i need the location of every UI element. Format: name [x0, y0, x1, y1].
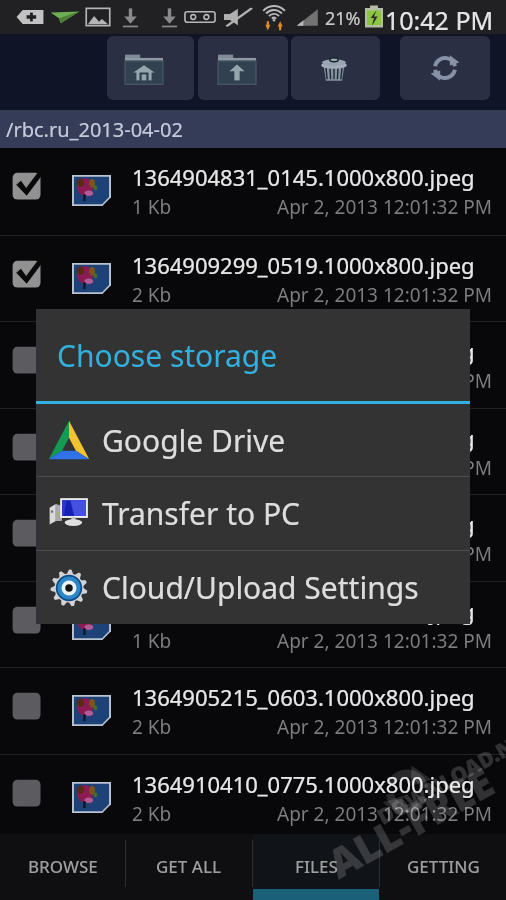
- staticText: FILES: [295, 855, 338, 878]
- staticText: GET ALL: [156, 855, 222, 878]
- button[interactable]: Cloud/Upload Settings: [36, 551, 470, 624]
- staticText: 1364908881_0408.1000x800.jpeg: [132, 423, 475, 453]
- button[interactable]: 1364903372_0220.1000x800.jpeg: [0, 322, 506, 408]
- staticText: BROWSE: [28, 855, 98, 878]
- button[interactable]: GETTING: [380, 834, 506, 900]
- staticText: Apr 2, 2013 12:01:32 PM: [277, 628, 492, 654]
- button[interactable]: Transfer to PC: [36, 477, 470, 550]
- button[interactable]: FILES: [253, 834, 379, 900]
- staticText: Apr 2, 2013 12:01:32 PM: [277, 801, 492, 827]
- button[interactable]: 1364902210_0111.1000x800.jpeg: [0, 495, 506, 581]
- button[interactable]: Delete: [291, 36, 380, 100]
- staticText: 2 Kb: [132, 455, 172, 481]
- button[interactable]: 1364907714_0328.1000x800.jpeg: [0, 582, 506, 667]
- staticText: Google Drive: [102, 420, 286, 461]
- staticText: 10:42 PM: [385, 3, 494, 37]
- button[interactable]: Up one folder: [198, 36, 288, 100]
- staticText: 1 Kb: [132, 194, 172, 220]
- staticText: 2 Kb: [132, 801, 172, 827]
- staticText: 1 Kb: [132, 541, 172, 567]
- button[interactable]: Google Drive: [36, 404, 470, 476]
- staticText: Apr 2, 2013 12:01:32 PM: [277, 368, 492, 394]
- staticText: ALL-FREE: [318, 754, 502, 889]
- button[interactable]: BROWSE: [0, 834, 125, 900]
- staticText: 1364910410_0775.1000x800.jpeg: [132, 769, 475, 799]
- button[interactable]: 1364905215_0603.1000x800.jpeg: [0, 668, 506, 754]
- button[interactable]: 1364909299_0519.1000x800.jpeg: [0, 236, 506, 321]
- staticText: Apr 2, 2013 12:01:32 PM: [277, 541, 492, 567]
- staticText: 1364904831_0145.1000x800.jpeg: [132, 162, 475, 192]
- staticText: Transfer to PC: [102, 493, 301, 534]
- staticText: 2 Kb: [132, 714, 172, 740]
- button[interactable]: GET ALL: [126, 834, 252, 900]
- staticText: 1364909299_0519.1000x800.jpeg: [132, 250, 475, 280]
- staticText: 2 Kb: [132, 282, 172, 308]
- button[interactable]: Home folder: [107, 36, 194, 100]
- button[interactable]: Refresh: [400, 36, 490, 100]
- button[interactable]: 1364904831_0145.1000x800.jpeg: [0, 148, 506, 235]
- button[interactable]: 1364910410_0775.1000x800.jpeg: [0, 755, 506, 840]
- staticText: 1364907714_0328.1000x800.jpeg: [132, 596, 475, 626]
- staticText: 21%: [325, 6, 361, 31]
- staticText: 1364905215_0603.1000x800.jpeg: [132, 682, 475, 712]
- staticText: DOWNLOAD.NET: [372, 720, 506, 831]
- staticText: Apr 2, 2013 12:01:32 PM: [277, 455, 492, 481]
- staticText: Cloud/Upload Settings: [102, 567, 419, 608]
- staticText: 1 Kb: [132, 628, 172, 654]
- staticText: Apr 2, 2013 12:01:32 PM: [277, 282, 492, 308]
- staticText: 1364902210_0111.1000x800.jpeg: [132, 509, 475, 539]
- staticText: 1364903372_0220.1000x800.jpeg: [132, 336, 475, 366]
- staticText: Apr 2, 2013 12:01:32 PM: [277, 714, 492, 740]
- staticText: GETTING: [407, 855, 480, 878]
- staticText: Apr 2, 2013 12:01:32 PM: [277, 194, 492, 220]
- staticText: Choose storage: [57, 335, 278, 376]
- button[interactable]: 1364908881_0408.1000x800.jpeg: [0, 409, 506, 494]
- staticText: /rbc.ru_2013-04-02: [6, 116, 183, 143]
